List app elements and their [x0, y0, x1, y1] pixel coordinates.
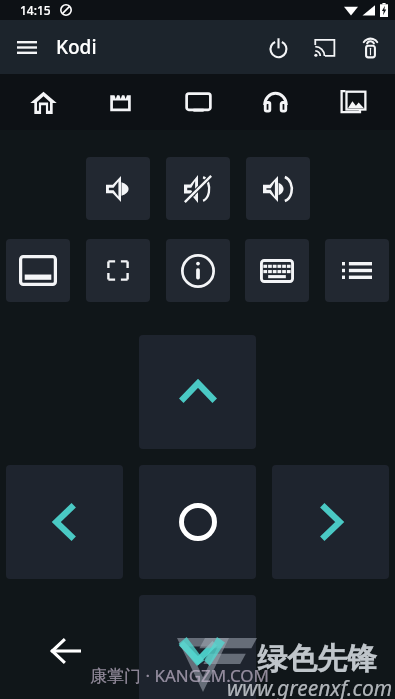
- button[interactable]: Volume up: [246, 157, 310, 220]
- button[interactable]: Mute: [166, 157, 230, 220]
- button[interactable]: Subtitles: [6, 239, 70, 302]
- staticText: 绿色先锋: [257, 640, 377, 678]
- staticText: www.greenxf.com: [227, 674, 393, 699]
- button[interactable]: Remote: [347, 24, 393, 70]
- button[interactable]: TV Shows: [163, 74, 233, 130]
- button[interactable]: Down: [139, 595, 256, 699]
- button[interactable]: Music: [240, 74, 310, 130]
- staticText: Kodi: [56, 34, 97, 60]
- staticText: 14:15: [20, 2, 51, 18]
- staticText: 康掌门 · KANGZM.COM: [90, 664, 270, 687]
- button[interactable]: Menu: [6, 26, 48, 68]
- button[interactable]: Pictures: [318, 74, 388, 130]
- button[interactable]: Left: [6, 465, 123, 579]
- button[interactable]: Home: [8, 74, 78, 130]
- button[interactable]: OK: [139, 465, 256, 579]
- button[interactable]: Cast: [301, 24, 347, 70]
- button[interactable]: Right: [272, 465, 389, 579]
- button[interactable]: Volume down: [86, 157, 150, 220]
- button[interactable]: Up: [139, 335, 256, 449]
- button[interactable]: Movies: [85, 74, 155, 130]
- button[interactable]: Power: [255, 24, 301, 70]
- button[interactable]: Keyboard: [245, 239, 309, 302]
- button[interactable]: Fullscreen: [86, 239, 150, 302]
- button[interactable]: Back: [43, 629, 87, 673]
- button[interactable]: Playlist: [325, 239, 389, 302]
- button[interactable]: Info: [166, 239, 230, 302]
